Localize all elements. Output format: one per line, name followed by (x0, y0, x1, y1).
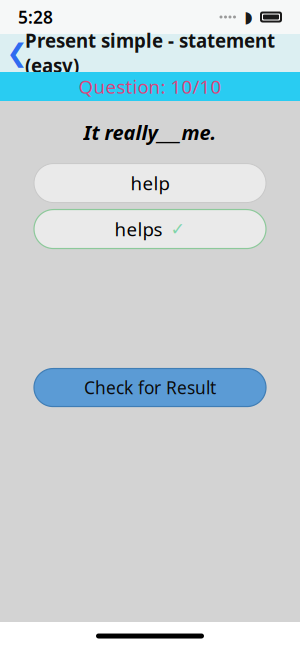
button[interactable]: helps (34, 210, 266, 249)
staticText: Question: 10/10 (78, 74, 221, 99)
staticText: ◗ (244, 8, 252, 26)
staticText: help (130, 171, 169, 195)
button[interactable]: Check for Result (34, 369, 266, 407)
staticText: 5:28 (18, 5, 53, 28)
staticText: ❮ (6, 39, 27, 67)
staticText: ✓ (170, 219, 185, 239)
staticText: Check for Result (84, 376, 216, 399)
button[interactable]: help (34, 164, 266, 203)
staticText: It really___me. (83, 119, 216, 146)
staticText: Present simple - statement (easy) (25, 28, 275, 78)
button[interactable]: Back (0, 34, 34, 72)
staticText: helps (114, 217, 162, 241)
